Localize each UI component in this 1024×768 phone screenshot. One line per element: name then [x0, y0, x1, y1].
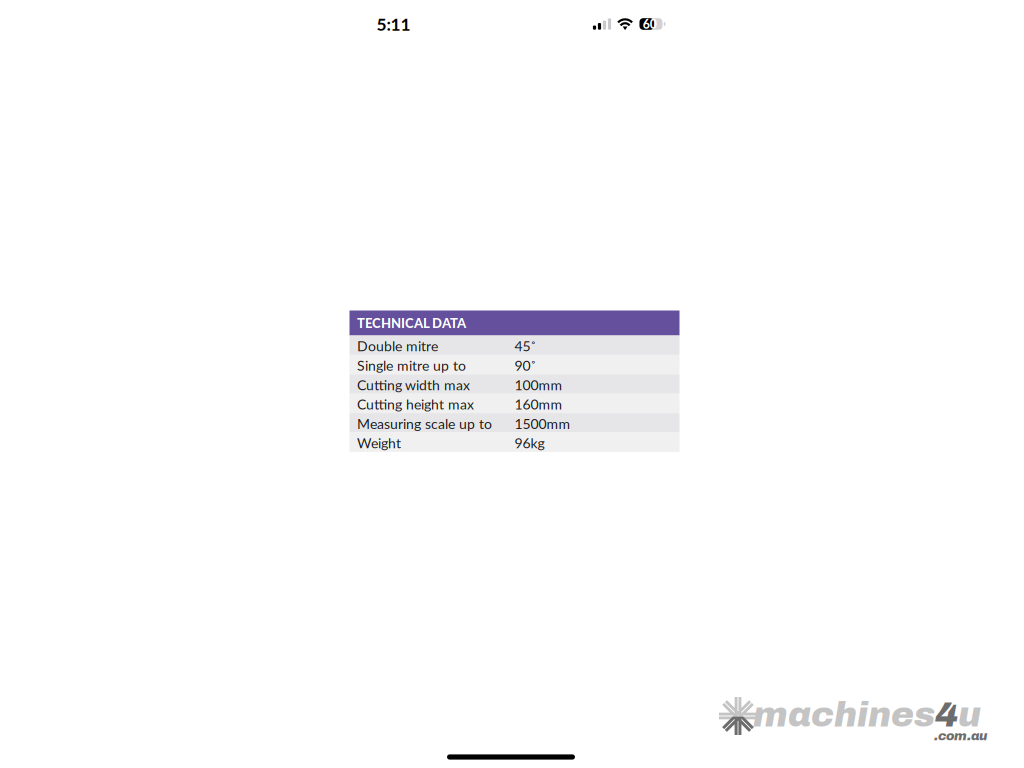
button[interactable]: Cutting width max	[349, 374, 679, 394]
staticText: Cutting height max	[357, 396, 474, 412]
staticText: Weight	[357, 434, 401, 451]
staticText: 1500mm	[514, 415, 570, 432]
button[interactable]: Weight	[349, 432, 679, 452]
staticText: TECHNICAL DATA	[357, 315, 466, 331]
button[interactable]: Double mitre	[349, 335, 679, 355]
staticText: 96kg	[514, 434, 544, 451]
staticText: 100mm	[514, 376, 562, 393]
staticText: Double mitre	[357, 337, 438, 354]
staticText: .com.au	[934, 729, 987, 743]
staticText: 90˚	[514, 357, 536, 374]
staticText: 60	[643, 17, 657, 31]
staticText: 160mm	[514, 396, 562, 412]
staticText: Single mitre up to	[357, 357, 466, 374]
button[interactable]: Single mitre up to	[349, 355, 679, 374]
staticText: u	[958, 696, 981, 734]
staticText: 5:11	[376, 14, 410, 34]
staticText: machines	[753, 696, 935, 734]
button[interactable]: Cutting height max	[349, 394, 679, 413]
staticText: 4	[935, 696, 958, 734]
button[interactable]: machines4u.com.au	[715, 691, 987, 745]
staticText: Cutting width max	[357, 376, 470, 393]
staticText: Measuring scale up to	[357, 415, 492, 432]
button[interactable]: Measuring scale up to	[349, 413, 679, 432]
staticText: 45˚	[514, 337, 536, 354]
